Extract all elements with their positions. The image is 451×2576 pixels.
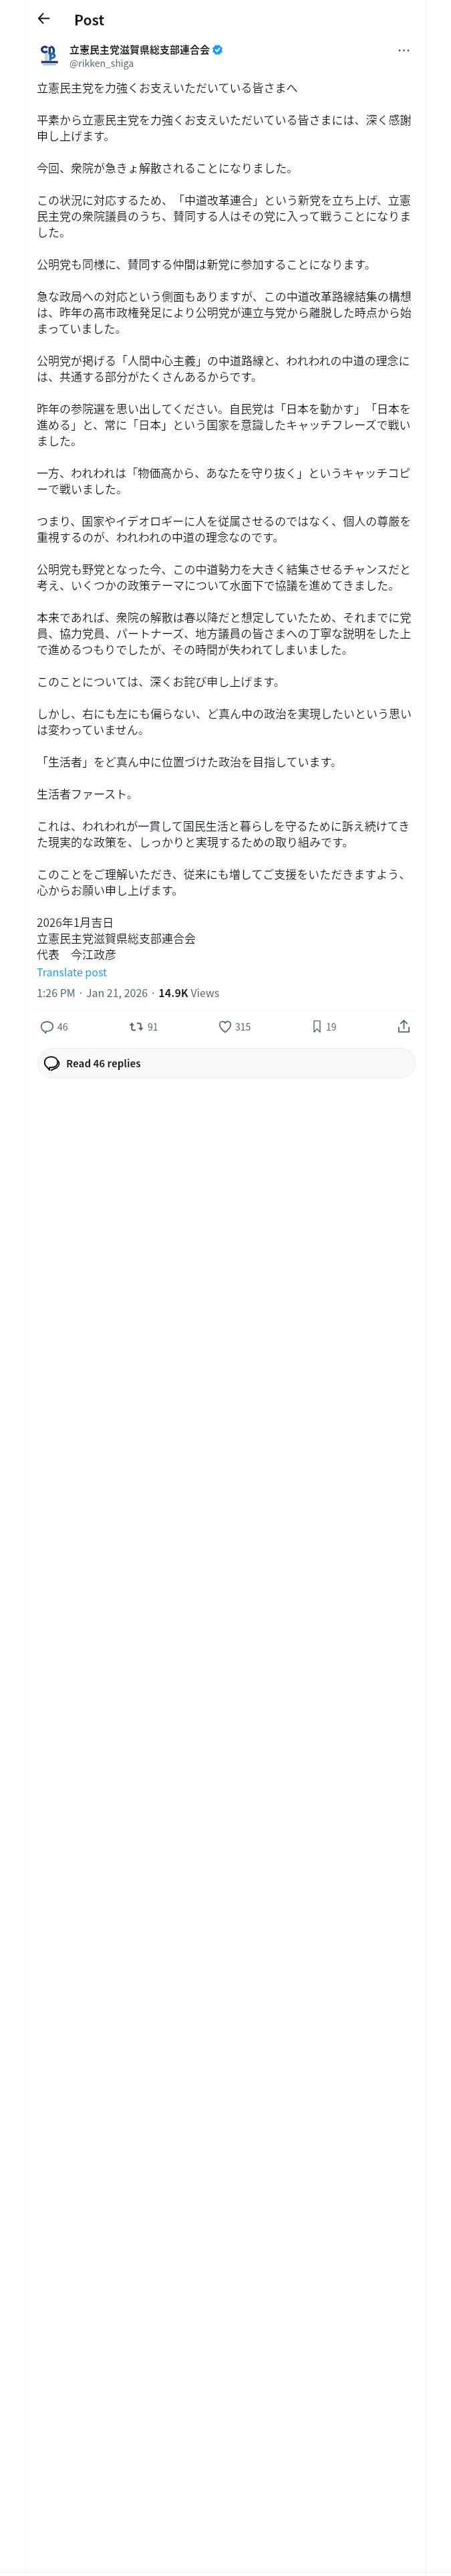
- button[interactable]: Like: [219, 1015, 251, 1038]
- button[interactable]: Share: [398, 1020, 410, 1033]
- staticText: 91: [148, 1020, 158, 1033]
- staticText: Post: [74, 9, 105, 29]
- staticText: 1:26 PM · Jan 21, 2026 · 14.9K Views: [37, 984, 220, 1000]
- button[interactable]: Profile photo: [37, 41, 63, 68]
- button[interactable]: Repost: [129, 1015, 158, 1038]
- button[interactable]: Translate post: [37, 964, 108, 979]
- staticText: @rikken_shiga: [69, 56, 134, 70]
- button[interactable]: Reply: [41, 1015, 68, 1038]
- button[interactable]: More options: [392, 39, 415, 62]
- button[interactable]: Back: [31, 6, 55, 30]
- button[interactable]: Bookmark: [312, 1015, 337, 1038]
- staticText: 315: [235, 1020, 251, 1033]
- staticText: Read 46 replies: [66, 1056, 141, 1071]
- staticText: 立憲民主党を力強くお支えいただいている皆さまへ 平素から立憲民主党を力強くお支え…: [37, 80, 416, 962]
- staticText: 46: [57, 1020, 68, 1033]
- button[interactable]: Read 46 replies: [37, 1048, 416, 1078]
- staticText: 19: [326, 1020, 337, 1033]
- button[interactable]: 立憲民主党滋賀県総支部連合会: [69, 43, 210, 56]
